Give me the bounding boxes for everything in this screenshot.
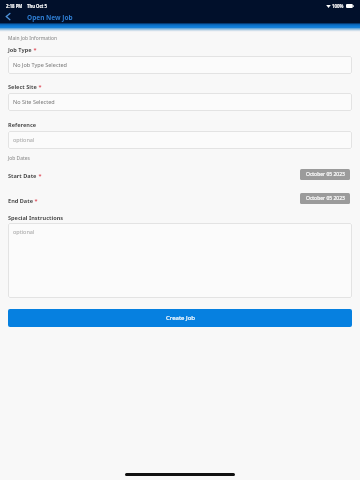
staticText: *: [33, 197, 38, 205]
button[interactable]: Create Job: [8, 309, 352, 327]
button[interactable]: October 05 2023: [300, 169, 350, 180]
staticText: optional: [13, 228, 35, 235]
staticText: Select Site: [8, 83, 37, 91]
staticText: *: [37, 172, 42, 180]
button[interactable]: No Site Selected: [8, 93, 352, 111]
staticText: Open New Job: [27, 13, 73, 22]
staticText: October 05 2023: [306, 195, 345, 202]
staticText: Start Date: [8, 172, 37, 180]
button[interactable]: optional: [8, 131, 352, 149]
staticText: Reference: [8, 121, 37, 129]
staticText: Thu Oct 5: [27, 3, 47, 9]
staticText: Create Job: [166, 314, 195, 322]
button[interactable]: No Job Type Selected: [8, 56, 352, 74]
staticText: Special Instructions: [8, 214, 64, 222]
staticText: No Site Selected: [13, 98, 55, 105]
staticText: End Date: [8, 197, 33, 205]
staticText: Job Type: [8, 46, 32, 54]
button[interactable]: Back: [0, 12, 20, 24]
button[interactable]: October 05 2023: [300, 193, 350, 204]
staticText: Job Dates: [8, 155, 30, 162]
staticText: October 05 2023: [306, 171, 345, 178]
staticText: *: [37, 83, 42, 91]
button[interactable]: optional: [8, 223, 352, 298]
staticText: 2:18 PM: [6, 3, 23, 9]
staticText: 100%: [332, 3, 344, 9]
staticText: No Job Type Selected: [13, 61, 67, 68]
staticText: optional: [13, 136, 35, 143]
staticText: Main Job Information: [8, 35, 57, 42]
staticText: *: [32, 46, 37, 54]
